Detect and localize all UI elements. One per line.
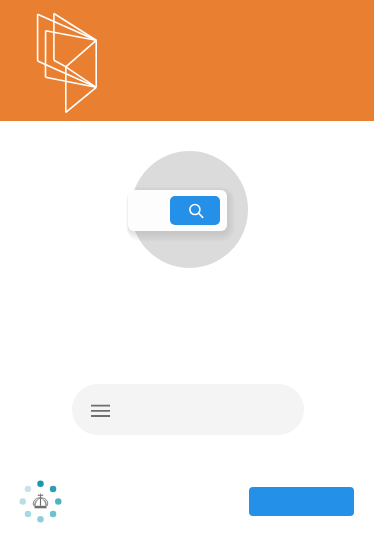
button[interactable]: Search [170, 196, 220, 225]
button[interactable] [128, 190, 227, 231]
button[interactable]: Menu [72, 384, 304, 435]
other: Logo [35, 11, 99, 115]
button[interactable]: Submit [249, 487, 354, 516]
